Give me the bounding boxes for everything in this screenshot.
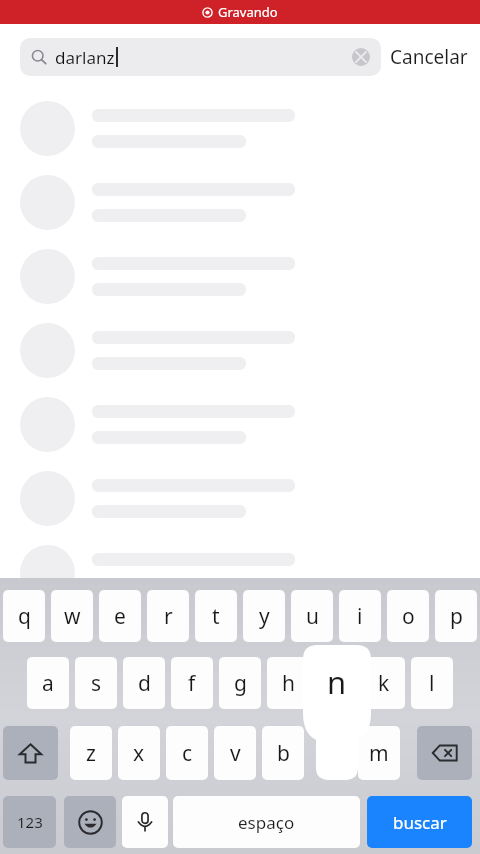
button[interactable]: Limpar texto	[352, 48, 370, 66]
button[interactable]: Ditado por voz	[122, 796, 168, 848]
staticText: a	[42, 669, 54, 698]
button[interactable]: Gravando	[0, 0, 480, 24]
button[interactable]	[0, 239, 480, 313]
button[interactable]: c	[166, 726, 208, 780]
staticText: Gravando	[218, 3, 278, 21]
staticText: v	[230, 739, 241, 768]
button[interactable]	[0, 387, 480, 461]
button[interactable]: n	[303, 645, 371, 780]
staticText: darlanz	[55, 46, 115, 69]
staticText: d	[138, 669, 151, 698]
button[interactable]	[0, 313, 480, 387]
button[interactable]: l	[411, 657, 453, 709]
staticText: w	[64, 602, 81, 631]
button[interactable]: k	[363, 657, 405, 709]
button[interactable]: q	[3, 590, 45, 642]
staticText: q	[18, 602, 31, 631]
staticText: u	[306, 602, 319, 631]
staticText: 123	[17, 812, 43, 832]
staticText: espaço	[238, 811, 295, 834]
button[interactable]: v	[214, 726, 256, 780]
button[interactable]: f	[171, 657, 213, 709]
button[interactable]: h	[267, 657, 309, 709]
button[interactable]: u	[291, 590, 333, 642]
button[interactable]: 123	[3, 796, 56, 848]
staticText: b	[277, 739, 290, 768]
button[interactable]: e	[99, 590, 141, 642]
button[interactable]: espaço	[173, 796, 360, 848]
staticText: f	[188, 669, 196, 698]
button[interactable]: x	[118, 726, 160, 780]
staticText: o	[402, 602, 415, 631]
staticText: Cancelar	[390, 44, 468, 70]
button[interactable]: Cancelar	[390, 34, 468, 80]
staticText: t	[212, 602, 220, 631]
button[interactable]: s	[75, 657, 117, 709]
button[interactable]: y	[243, 590, 285, 642]
button[interactable]: Shift	[3, 726, 58, 780]
button[interactable]: Emoji	[64, 796, 116, 848]
button[interactable]	[0, 91, 480, 165]
staticText: h	[282, 669, 295, 698]
staticText: g	[234, 669, 247, 698]
staticText: s	[91, 669, 102, 698]
button[interactable]	[0, 461, 480, 535]
button[interactable]	[0, 165, 480, 239]
staticText: l	[429, 669, 435, 698]
button[interactable]: z	[70, 726, 112, 780]
staticText: e	[114, 602, 126, 631]
button[interactable]: darlanz	[20, 38, 381, 76]
button[interactable]: g	[219, 657, 261, 709]
staticText: x	[133, 739, 145, 768]
button[interactable]: b	[262, 726, 304, 780]
button[interactable]: a	[27, 657, 69, 709]
button[interactable]: buscar	[367, 796, 472, 848]
staticText: p	[450, 602, 463, 631]
button[interactable]: o	[387, 590, 429, 642]
staticText: i	[357, 602, 363, 631]
button[interactable]: Apagar	[417, 726, 472, 780]
staticText: buscar	[393, 811, 447, 834]
staticText: y	[259, 602, 270, 631]
button[interactable]: p	[435, 590, 477, 642]
button[interactable]	[0, 535, 480, 609]
button[interactable]: m	[358, 726, 400, 780]
button[interactable]: i	[339, 590, 381, 642]
staticText: n	[327, 661, 347, 703]
button[interactable]: t	[195, 590, 237, 642]
button[interactable]: w	[51, 590, 93, 642]
staticText: k	[378, 669, 390, 698]
button[interactable]: d	[123, 657, 165, 709]
staticText: m	[369, 739, 389, 768]
staticText: z	[86, 739, 96, 768]
staticText: c	[182, 739, 193, 768]
staticText: r	[164, 602, 173, 631]
button[interactable]: r	[147, 590, 189, 642]
